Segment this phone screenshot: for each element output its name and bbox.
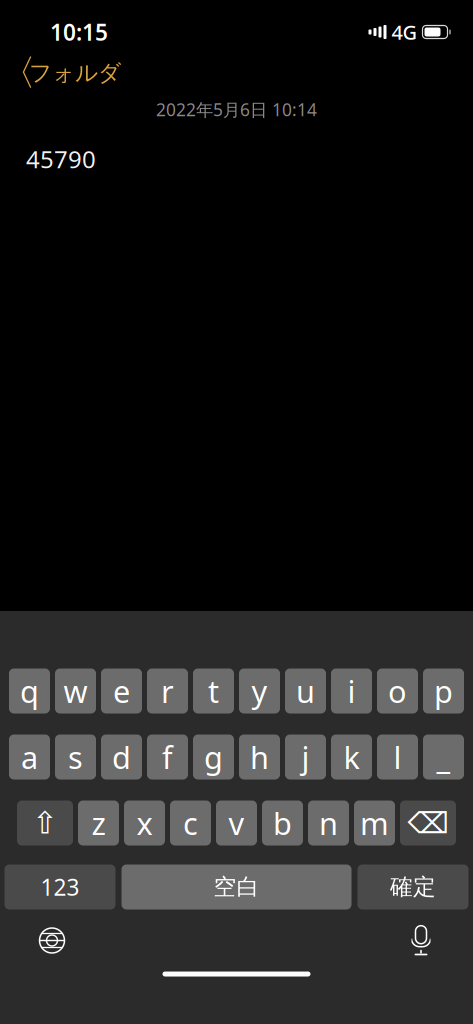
staticText: 4G [391,19,417,45]
staticText: n [319,803,338,843]
button[interactable]: _ [423,734,464,779]
staticText: d [112,737,131,777]
button[interactable]: d [101,734,142,779]
button[interactable]: k [331,734,372,779]
staticText: 〈 [0,51,36,95]
button[interactable]: l [377,734,418,779]
staticText: t [208,671,219,711]
staticText: 10:15 [50,17,108,47]
staticText: フォルダ [29,59,121,87]
button[interactable]: f [147,734,188,779]
button[interactable]: Delete [400,800,456,845]
button[interactable]: t [193,668,234,713]
button[interactable]: 123 [4,864,115,909]
button[interactable]: r [147,668,188,713]
staticText: g [204,737,223,777]
button[interactable]: w [55,668,96,713]
button[interactable]: 〈 [0,53,121,93]
staticText: 空白 [213,873,259,901]
button[interactable]: n [308,800,349,845]
button[interactable]: o [377,668,418,713]
staticText: j [301,737,309,777]
staticText: f [162,737,173,777]
button[interactable]: c [170,800,211,845]
staticText: b [273,803,292,843]
staticText: x [136,803,152,843]
button[interactable]: q [9,668,50,713]
button[interactable]: 空白 [121,864,351,909]
staticText: 45790 [26,143,96,175]
staticText: m [360,803,389,843]
button[interactable]: i [331,668,372,713]
staticText: ⇧ [32,806,58,840]
staticText: u [296,671,315,711]
staticText: v [228,803,244,843]
staticText: r [161,671,174,711]
staticText: a [21,737,38,777]
staticText: y [251,671,267,711]
button[interactable]: u [285,668,326,713]
button[interactable]: Dictation [395,918,447,962]
button[interactable]: j [285,734,326,779]
staticText: s [68,737,83,777]
button[interactable]: g [193,734,234,779]
button[interactable]: z [78,800,119,845]
button[interactable]: Shift [17,800,73,845]
staticText: q [20,671,39,711]
button[interactable]: h [239,734,280,779]
staticText: c [183,803,198,843]
button[interactable]: y [239,668,280,713]
button[interactable]: b [262,800,303,845]
button[interactable]: a [9,734,50,779]
button[interactable]: 確定 [357,864,468,909]
staticText: e [113,671,130,711]
button[interactable]: p [423,668,464,713]
button[interactable]: Switch keyboard language [26,918,78,962]
button[interactable]: e [101,668,142,713]
staticText: 確定 [390,873,436,901]
staticText: 2022年5月6日 10:14 [156,98,317,121]
staticText: 123 [40,872,79,902]
staticText: w [63,671,87,711]
button[interactable]: m [354,800,395,845]
staticText: l [393,737,401,777]
button[interactable]: x [124,800,165,845]
staticText: i [347,671,355,711]
staticText: p [434,671,453,711]
staticText: z [91,803,105,843]
staticText: h [250,737,269,777]
staticText: o [388,671,407,711]
button[interactable]: s [55,734,96,779]
staticText: k [343,737,359,777]
button[interactable]: v [216,800,257,845]
staticText: _ [436,737,450,777]
staticText: ⌫ [407,806,448,840]
